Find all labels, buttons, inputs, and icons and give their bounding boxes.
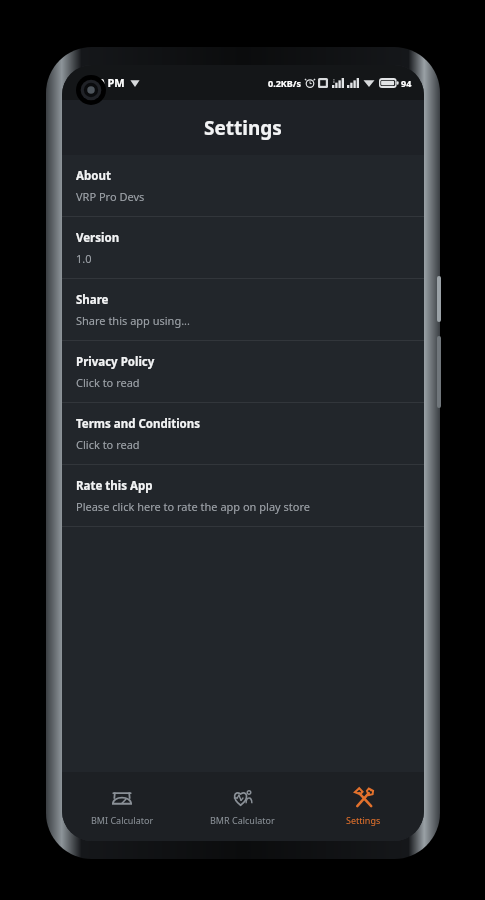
staticText: 94 (401, 77, 412, 89)
staticText: Click to read (76, 437, 140, 452)
button[interactable]: Version (62, 217, 424, 278)
button[interactable]: Privacy Policy (62, 341, 424, 402)
button[interactable]: BMR Calculator (182, 772, 303, 841)
staticText: 1.0 (76, 251, 92, 266)
staticText: BMR Calculator (210, 814, 275, 826)
staticText: About (76, 168, 111, 184)
staticText: Settings (204, 115, 282, 141)
staticText: Version (76, 230, 120, 246)
staticText: BMI Calculator (91, 814, 154, 826)
staticText: 0.2KB/s (268, 77, 302, 89)
button[interactable]: Share (62, 279, 424, 340)
staticText: Settings (346, 814, 381, 826)
staticText: Privacy Policy (76, 354, 155, 370)
button[interactable]: Settings (303, 772, 424, 841)
staticText: Share (76, 292, 109, 308)
staticText: VRP Pro Devs (76, 189, 145, 204)
button[interactable]: BMI Calculator (62, 772, 182, 841)
staticText: 10 PM (92, 75, 125, 90)
button[interactable]: Terms and Conditions (62, 403, 424, 464)
staticText: Click to read (76, 375, 140, 390)
button[interactable]: About (62, 155, 424, 216)
staticText: Please click here to rate the app on pla… (76, 499, 310, 514)
staticText: Rate this App (76, 478, 153, 494)
staticText: Share this app using... (76, 313, 191, 328)
staticText: Terms and Conditions (76, 416, 201, 432)
button[interactable]: Rate this App (62, 465, 424, 526)
